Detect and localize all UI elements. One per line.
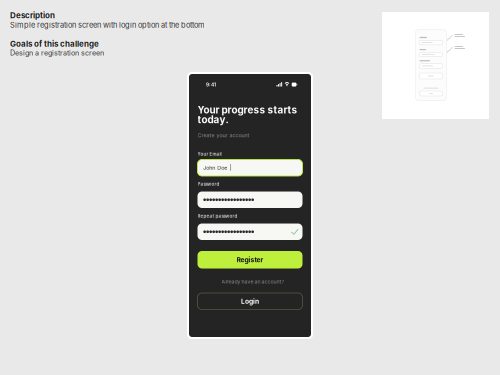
- staticText: John Doe: [203, 164, 227, 171]
- staticText: Password: [197, 181, 219, 187]
- staticText: today.: [197, 114, 228, 126]
- button[interactable]: [197, 191, 302, 208]
- staticText: Goals of this challenge: [10, 39, 99, 49]
- staticText: 9:41: [206, 82, 216, 88]
- staticText: Simple registration screen with login op…: [10, 20, 205, 29]
- staticText: Design a registration screen: [10, 48, 104, 57]
- staticText: Your Email: [197, 151, 221, 157]
- staticText: Repeat password: [197, 213, 237, 219]
- staticText: Description: [10, 10, 55, 20]
- button[interactable]: Register: [197, 251, 302, 268]
- staticText: Login: [241, 297, 259, 305]
- button[interactable]: [197, 223, 302, 240]
- staticText: Already have an account?: [221, 278, 284, 285]
- button[interactable]: John Doe: [197, 159, 302, 176]
- staticText: |: [230, 164, 232, 171]
- button[interactable]: Login: [197, 293, 302, 309]
- staticText: Create your account: [197, 132, 249, 138]
- staticText: Register: [236, 256, 263, 264]
- staticText: Your progress starts: [197, 104, 297, 116]
